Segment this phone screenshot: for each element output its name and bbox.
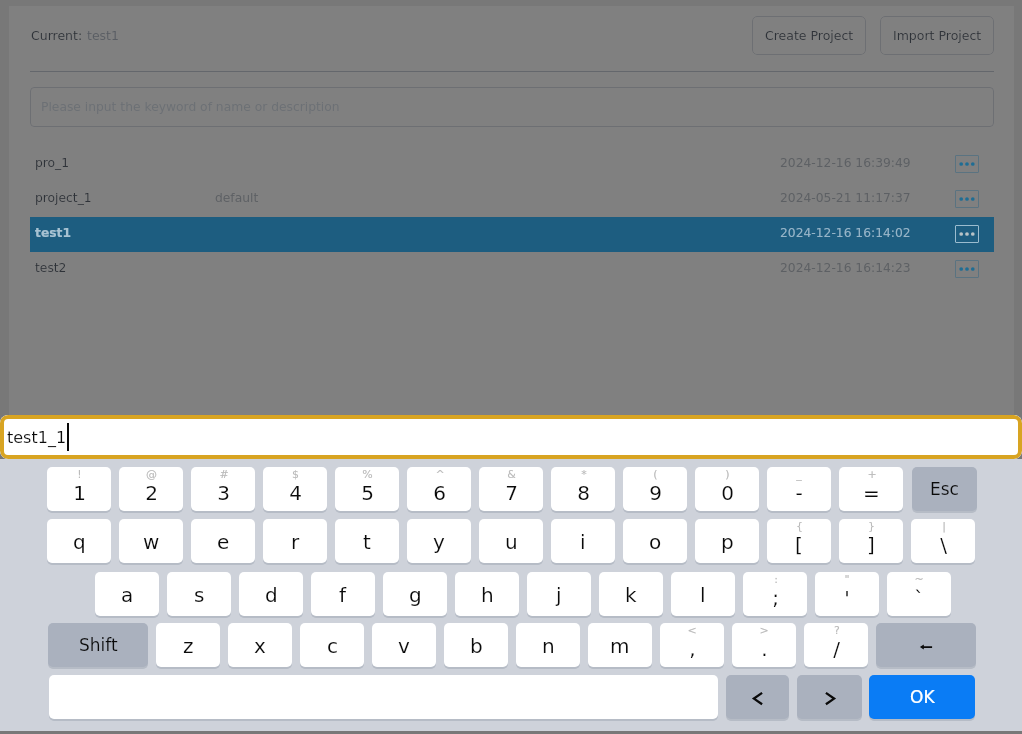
- button[interactable]: z: [156, 623, 220, 667]
- staticText: ]: [867, 533, 875, 556]
- button[interactable]: _: [767, 467, 831, 511]
- staticText: r: [291, 530, 300, 553]
- staticText: u: [505, 530, 518, 553]
- button[interactable]: More options: [955, 225, 979, 243]
- button[interactable]: +: [839, 467, 903, 511]
- button[interactable]: s: [167, 572, 231, 616]
- button[interactable]: n: [516, 623, 580, 667]
- staticText: ': [844, 586, 850, 609]
- staticText: @: [146, 468, 157, 481]
- button[interactable]: @: [119, 467, 183, 511]
- button[interactable]: y: [407, 519, 471, 563]
- button[interactable]: }: [839, 519, 903, 563]
- button[interactable]: test2: [30, 252, 994, 287]
- button[interactable]: i: [551, 519, 615, 563]
- button[interactable]: k: [599, 572, 663, 616]
- button[interactable]: Next: [797, 675, 862, 719]
- button[interactable]: Esc: [912, 467, 977, 511]
- button[interactable]: l: [671, 572, 735, 616]
- button[interactable]: j: [527, 572, 591, 616]
- staticText: Shift: [79, 635, 118, 655]
- button[interactable]: &: [479, 467, 543, 511]
- button[interactable]: *: [551, 467, 615, 511]
- staticText: 2: [145, 481, 158, 504]
- staticText: $: [292, 468, 299, 481]
- button[interactable]: q: [47, 519, 111, 563]
- button[interactable]: ): [695, 467, 759, 511]
- staticText: }: [868, 520, 875, 533]
- button[interactable]: !: [47, 467, 111, 511]
- button[interactable]: g: [383, 572, 447, 616]
- button[interactable]: :: [743, 572, 807, 616]
- button[interactable]: o: [623, 519, 687, 563]
- staticText: q: [73, 530, 86, 553]
- button[interactable]: h: [455, 572, 519, 616]
- button[interactable]: $: [263, 467, 327, 511]
- staticText: t: [363, 530, 371, 553]
- staticText: ^: [435, 468, 445, 481]
- staticText: s: [194, 583, 205, 606]
- button[interactable]: test1_1: [0, 415, 1022, 459]
- staticText: Current:: [31, 28, 87, 43]
- staticText: test1: [87, 28, 119, 43]
- staticText: &: [507, 468, 516, 481]
- button[interactable]: t: [335, 519, 399, 563]
- button[interactable]: ": [815, 572, 879, 616]
- button[interactable]: p: [695, 519, 759, 563]
- staticText: 2024-12-16 16:14:23: [780, 261, 911, 275]
- button[interactable]: Please input the keyword of name or desc…: [30, 87, 994, 127]
- button[interactable]: >: [732, 623, 796, 667]
- button[interactable]: f: [311, 572, 375, 616]
- button[interactable]: More options: [955, 260, 979, 278]
- staticText: k: [625, 583, 637, 606]
- button[interactable]: d: [239, 572, 303, 616]
- staticText: v: [398, 634, 410, 657]
- button[interactable]: More options: [955, 190, 979, 208]
- button[interactable]: #: [191, 467, 255, 511]
- button[interactable]: v: [372, 623, 436, 667]
- button[interactable]: w: [119, 519, 183, 563]
- button[interactable]: ?: [804, 623, 868, 667]
- staticText: m: [610, 634, 630, 657]
- button[interactable]: a: [95, 572, 159, 616]
- button[interactable]: project_1: [30, 182, 994, 217]
- button[interactable]: Shift: [48, 623, 148, 667]
- button[interactable]: x: [228, 623, 292, 667]
- button[interactable]: Previous: [726, 675, 789, 719]
- button[interactable]: c: [300, 623, 364, 667]
- button[interactable]: e: [191, 519, 255, 563]
- staticText: 9: [649, 481, 662, 504]
- button[interactable]: More options: [955, 155, 979, 173]
- button[interactable]: |: [911, 519, 975, 563]
- staticText: +: [867, 468, 877, 481]
- button[interactable]: <: [660, 623, 724, 667]
- staticText: Please input the keyword of name or desc…: [41, 100, 340, 114]
- staticText: ~: [914, 573, 924, 586]
- button[interactable]: m: [588, 623, 652, 667]
- button[interactable]: b: [444, 623, 508, 667]
- staticText: _: [796, 468, 802, 481]
- button[interactable]: Backspace: [876, 623, 976, 667]
- button[interactable]: ~: [887, 572, 951, 616]
- staticText: |: [942, 520, 946, 533]
- button[interactable]: (: [623, 467, 687, 511]
- staticText: i: [580, 530, 586, 553]
- button[interactable]: r: [263, 519, 327, 563]
- staticText: y: [433, 530, 445, 553]
- button[interactable]: {: [767, 519, 831, 563]
- button[interactable]: %: [335, 467, 399, 511]
- staticText: 4: [289, 481, 302, 504]
- staticText: Import Project: [893, 28, 982, 43]
- button[interactable]: ^: [407, 467, 471, 511]
- button[interactable]: OK: [869, 675, 975, 719]
- staticText: /: [833, 637, 840, 660]
- button[interactable]: Import Project: [880, 16, 994, 55]
- staticText: w: [143, 530, 160, 553]
- button[interactable]: test1: [30, 217, 994, 252]
- staticText: g: [409, 583, 422, 606]
- button[interactable]: pro_1: [30, 147, 994, 182]
- button[interactable]: Create Project: [752, 16, 866, 55]
- staticText: Create Project: [765, 28, 854, 43]
- button[interactable]: u: [479, 519, 543, 563]
